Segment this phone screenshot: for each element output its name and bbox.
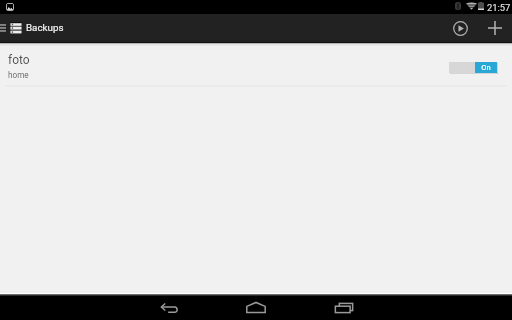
button[interactable]: Recent apps <box>301 296 385 320</box>
staticText: 21:57 <box>487 2 511 13</box>
staticText: foto <box>8 53 30 67</box>
button[interactable]: Navigate up <box>0 14 23 42</box>
staticText: home <box>8 70 29 80</box>
button[interactable]: On <box>449 62 498 74</box>
button[interactable]: Home <box>214 296 298 320</box>
button[interactable]: Run backup <box>446 14 475 42</box>
button[interactable]: Add backup <box>480 14 509 42</box>
button[interactable]: foto <box>0 45 512 86</box>
button[interactable]: Back <box>128 296 212 320</box>
staticText: Backups <box>26 22 64 33</box>
staticText: On <box>481 63 491 72</box>
